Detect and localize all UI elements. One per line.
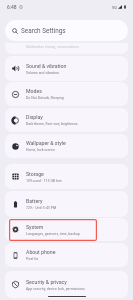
button[interactable]: Notification history, conversations [5, 43, 128, 54]
staticText: Wallpaper & style [26, 140, 66, 146]
staticText: App security, device lock, permissions [26, 287, 85, 291]
button[interactable]: About phone [5, 243, 128, 267]
staticText: Battery [26, 198, 43, 204]
staticText: Volume and vibration [26, 71, 59, 75]
button[interactable]: Battery [5, 191, 128, 217]
staticText: Do Not Disturb, Sleeping [26, 96, 64, 100]
button[interactable]: Storage [5, 164, 128, 189]
button[interactable]: Security & privacy [5, 271, 128, 298]
staticText: Sound & vibration [26, 63, 67, 69]
staticText: 6:48 [7, 4, 17, 10]
staticText: Search Settings [21, 27, 66, 35]
button[interactable]: Wallpaper & style [5, 134, 128, 158]
staticText: System [26, 224, 44, 230]
button[interactable]: Sound & vibration [5, 56, 128, 81]
staticText: Home, lock screen [26, 148, 55, 152]
button[interactable]: Display [5, 108, 128, 132]
button[interactable]: Modes [5, 82, 128, 106]
staticText: 10% used - 115 GB free [26, 179, 62, 183]
staticText: Pixel 6a [26, 257, 39, 261]
button[interactable]: Search Settings [5, 20, 128, 41]
staticText: Display [26, 114, 43, 120]
staticText: Security & privacy [26, 279, 67, 285]
staticText: 5G [112, 5, 117, 10]
staticText: 72% - Until 5:45 PM [26, 206, 56, 210]
other: System highlighted [9, 219, 97, 241]
staticText: Languages, gestures, time, backup [26, 232, 80, 236]
staticText: Dark theme, Font size, brightness [26, 122, 78, 126]
staticText: Notification history, conversations [26, 45, 79, 49]
staticText: Storage [26, 171, 44, 177]
button[interactable]: System [5, 218, 128, 241]
staticText: Modes [26, 88, 42, 94]
staticText: About phone [26, 249, 56, 255]
